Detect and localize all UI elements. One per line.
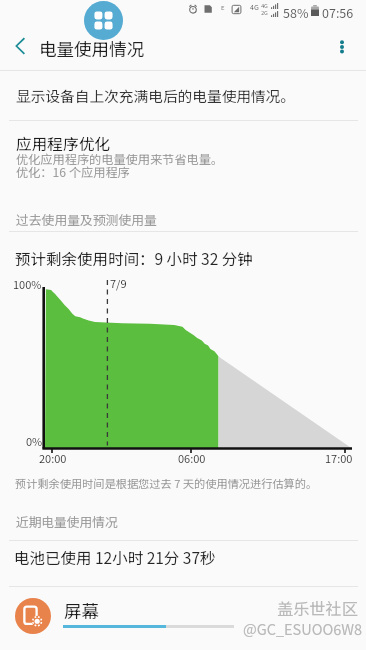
button[interactable]: 应用程序优化 <box>0 121 366 190</box>
staticText: 4G <box>250 2 259 12</box>
button[interactable]: Assistive menu <box>84 1 123 40</box>
staticText: 电池已使用 12小时 21分 37秒 <box>14 546 216 568</box>
staticText: 优化应用程序的电量使用来节省电量。 <box>16 150 224 168</box>
button[interactable]: More options <box>321 26 363 68</box>
staticText: 07:56 <box>322 3 354 21</box>
staticText: 近期电量使用情况 <box>16 512 118 530</box>
staticText: 盖乐世社区 <box>277 596 358 619</box>
staticText: 20:00 <box>39 450 67 466</box>
button[interactable]: Navigate up <box>0 26 40 66</box>
staticText: 4G <box>261 2 268 10</box>
staticText: 7/9 <box>110 275 127 291</box>
staticText: E <box>221 3 225 12</box>
staticText: 电量使用情况 <box>39 36 144 61</box>
staticText: 预计剩余使用时间：9 小时 32 分钟 <box>15 247 253 269</box>
staticText: 屏幕 <box>64 598 99 623</box>
staticText: 2G <box>261 9 268 17</box>
staticText: 过去使用量及预测使用量 <box>16 210 157 229</box>
staticText: 17:00 <box>325 450 353 466</box>
staticText: 06:00 <box>178 450 206 466</box>
staticText: 0% <box>26 433 43 449</box>
staticText: 预计剩余使用时间是根据您过去 7 天的使用情况进行估算的。 <box>15 475 318 491</box>
button[interactable]: 屏幕 <box>0 587 366 650</box>
staticText: 100% <box>13 276 42 292</box>
staticText: @GC_ESUOO6W8 <box>243 618 363 639</box>
staticText: 优化：16 个应用程序 <box>16 163 130 181</box>
staticText: 应用程序优化 <box>16 132 111 155</box>
staticText: 58% <box>283 3 309 21</box>
staticText: 显示设备自上次充满电后的电量使用情况。 <box>16 85 296 106</box>
